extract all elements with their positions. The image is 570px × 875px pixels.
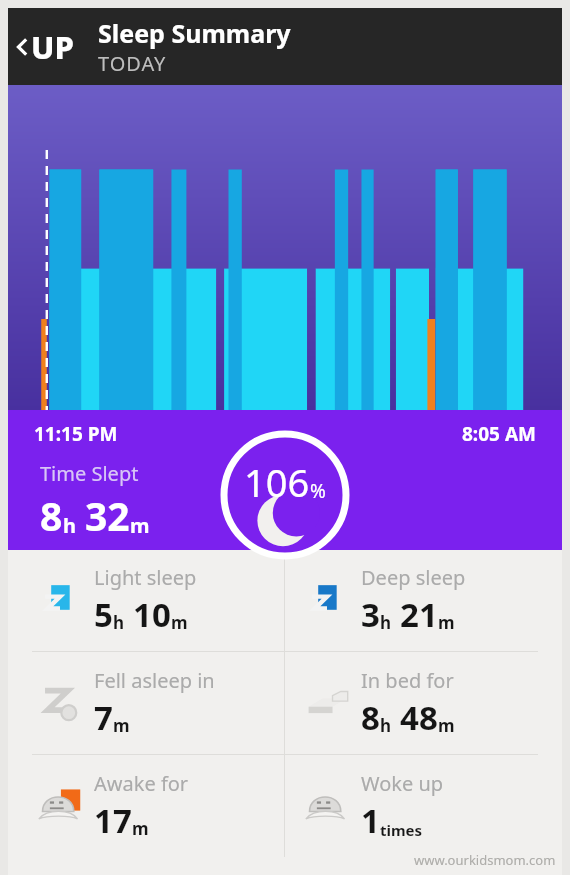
button[interactable]: Deep sleep	[299, 550, 538, 651]
button[interactable]: In bed for	[299, 652, 538, 754]
staticText: 7	[94, 695, 113, 740]
staticText: 11:15 PM	[34, 421, 118, 447]
button[interactable]: Light sleep	[32, 550, 284, 651]
staticText: www.ourkidsmom.com	[414, 851, 556, 869]
staticText: 32	[85, 489, 130, 542]
staticText: m	[171, 611, 188, 634]
staticText: 106	[244, 456, 310, 508]
button[interactable]: Back to UP	[8, 20, 80, 74]
staticText: UP	[31, 26, 74, 68]
staticText: 8	[40, 489, 63, 542]
staticText: Fell asleep in	[94, 667, 215, 694]
staticText: Awake for	[94, 770, 189, 797]
staticText: In bed for	[361, 667, 454, 694]
staticText: TODAY	[98, 50, 167, 77]
staticText: 8:05 AM	[462, 421, 536, 447]
staticText: m	[132, 817, 149, 840]
staticText: 5	[94, 592, 113, 637]
button[interactable]: Awake for	[32, 755, 284, 857]
staticText: 21	[400, 592, 438, 637]
staticText: %	[310, 478, 326, 504]
staticText: 3	[361, 592, 380, 637]
staticText: 10	[133, 592, 171, 637]
staticText: m	[438, 611, 455, 634]
button[interactable]: Woke up	[299, 755, 538, 857]
staticText: 8	[361, 695, 380, 740]
staticText: Woke up	[361, 770, 444, 797]
staticText: m	[113, 714, 130, 737]
staticText: Deep sleep	[361, 564, 466, 591]
staticText: Time Slept	[40, 460, 139, 487]
staticText: h	[113, 611, 125, 634]
staticText: h	[380, 611, 392, 634]
staticText: m	[130, 512, 150, 539]
staticText: Sleep Summary	[98, 16, 291, 50]
staticText: h	[63, 512, 76, 539]
staticText: times	[380, 820, 423, 840]
staticText: 1	[361, 798, 380, 843]
staticText: h	[380, 714, 392, 737]
staticText: Light sleep	[94, 564, 197, 591]
staticText: 17	[94, 798, 132, 843]
staticText: 48	[400, 695, 438, 740]
button[interactable]: Fell asleep in	[32, 652, 284, 754]
staticText: m	[438, 714, 455, 737]
